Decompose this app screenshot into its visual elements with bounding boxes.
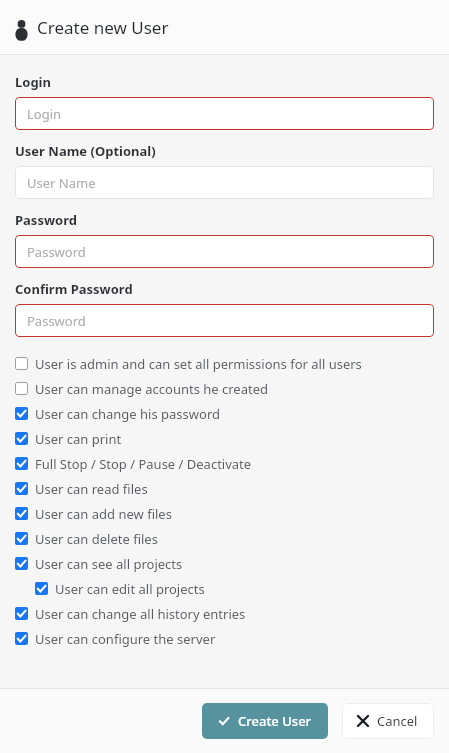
button[interactable]: User can change his password: [15, 401, 434, 426]
button[interactable]: User can manage accounts he created: [15, 376, 434, 401]
staticText: Confirm Password: [15, 280, 133, 298]
button[interactable]: User can see all projects: [15, 551, 434, 576]
staticText: User Name: [27, 174, 96, 192]
button[interactable]: User can delete files: [15, 526, 434, 551]
button[interactable]: Create User: [202, 703, 328, 739]
staticText: Full Stop / Stop / Pause / Deactivate: [35, 455, 252, 473]
staticText: Password: [15, 211, 77, 229]
button[interactable]: User can read files: [15, 476, 434, 501]
staticText: User can edit all projects: [55, 580, 205, 598]
button[interactable]: Password: [15, 235, 434, 268]
button[interactable]: User can change all history entries: [15, 601, 434, 626]
staticText: User can print: [35, 430, 122, 448]
button[interactable]: User is admin and can set all permission…: [15, 351, 434, 376]
staticText: User can see all projects: [35, 555, 183, 573]
staticText: Login: [27, 105, 62, 123]
staticText: Password: [27, 312, 86, 330]
button[interactable]: User can print: [15, 426, 434, 451]
button[interactable]: Full Stop / Stop / Pause / Deactivate: [15, 451, 434, 476]
staticText: User can change his password: [35, 405, 220, 423]
staticText: User can read files: [35, 480, 148, 498]
staticText: User is admin and can set all permission…: [35, 355, 362, 373]
button[interactable]: User can add new files: [15, 501, 434, 526]
staticText: Password: [27, 243, 86, 261]
button[interactable]: Login: [15, 97, 434, 130]
staticText: Login: [15, 73, 51, 91]
button[interactable]: User can edit all projects: [15, 576, 434, 601]
button[interactable]: Cancel: [342, 703, 434, 739]
button[interactable]: User Name: [15, 166, 434, 199]
staticText: Create new User: [37, 16, 169, 39]
staticText: User can add new files: [35, 505, 172, 523]
staticText: Create User: [238, 712, 312, 730]
staticText: User can delete files: [35, 530, 158, 548]
button[interactable]: Password: [15, 304, 434, 337]
staticText: User can configure the server: [35, 630, 216, 648]
other: Cancel: [358, 716, 368, 726]
staticText: Cancel: [377, 712, 418, 730]
staticText: User can manage accounts he created: [35, 380, 268, 398]
staticText: User Name (Optional): [15, 142, 156, 160]
button[interactable]: User can configure the server: [15, 626, 434, 651]
staticText: User can change all history entries: [35, 605, 246, 623]
